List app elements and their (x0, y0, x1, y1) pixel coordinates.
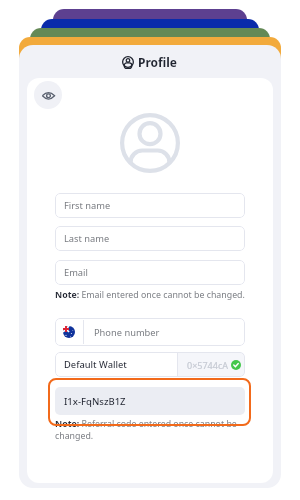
button[interactable]: I1x-FqNszB1Z (55, 387, 245, 415)
button[interactable]: Last name (55, 226, 245, 251)
button[interactable]: Email (55, 260, 245, 285)
staticText: Default Wallet (64, 358, 127, 371)
staticText: Note: Email entered once cannot be chang… (55, 289, 245, 301)
staticText: Last name (64, 232, 110, 245)
button[interactable]: Phone number (55, 318, 245, 346)
staticText: Note: Referral code entered once cannot … (55, 418, 245, 441)
button[interactable]: Show details (34, 81, 62, 109)
staticText: Email (64, 266, 88, 279)
staticText: First name (64, 199, 111, 212)
staticText: 0×5744cA (187, 359, 228, 371)
staticText: Phone number (94, 326, 160, 339)
button[interactable]: Default Wallet (55, 352, 245, 377)
staticText: Profile (138, 54, 178, 70)
button[interactable]: First name (55, 193, 245, 218)
staticText: I1x-FqNszB1Z (64, 395, 126, 408)
